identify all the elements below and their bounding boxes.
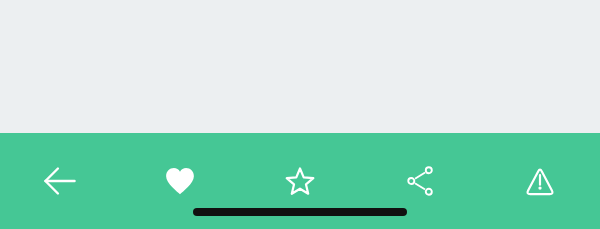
button[interactable]: Back [0, 133, 120, 229]
button[interactable]: Share [360, 133, 480, 229]
button[interactable]: Report a problem [480, 133, 600, 229]
button[interactable]: Rate [240, 133, 360, 229]
button[interactable]: Favorite [120, 133, 240, 229]
